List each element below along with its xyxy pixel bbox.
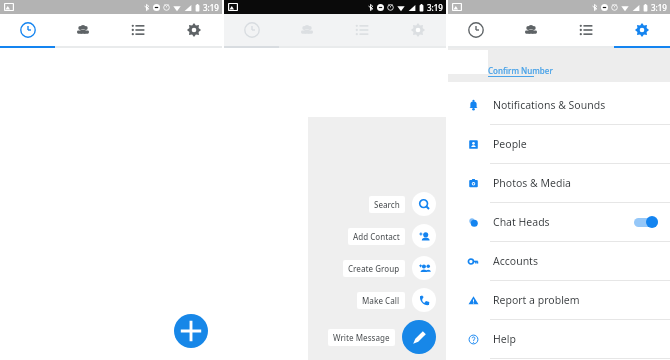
button[interactable]: Recents: [224, 14, 279, 46]
button[interactable]: Help: [448, 320, 670, 359]
button[interactable]: Notifications & Sounds: [448, 86, 670, 125]
button[interactable]: Settings: [390, 14, 446, 46]
staticText: 3:19: [651, 2, 667, 13]
button[interactable]: Recents: [0, 14, 55, 46]
button[interactable]: Messages: [110, 14, 166, 46]
other: Search: [412, 192, 436, 216]
staticText: Add Contact: [353, 231, 400, 242]
button[interactable]: Accounts: [448, 242, 670, 281]
other: Create Group: [412, 256, 436, 280]
button[interactable]: People: [279, 14, 334, 46]
staticText: Notifications & Sounds: [493, 98, 606, 112]
staticText: Help: [493, 332, 516, 346]
staticText: Create Group: [348, 263, 400, 274]
staticText: People: [493, 137, 527, 151]
button[interactable]: People: [55, 14, 110, 46]
button[interactable]: New: [174, 314, 208, 348]
other: Write Message: [402, 320, 436, 354]
button[interactable]: Photos & Media: [448, 164, 670, 203]
button[interactable]: Add Contact: [224, 224, 436, 248]
button[interactable]: Settings: [166, 14, 222, 46]
button[interactable]: People: [448, 125, 670, 164]
staticText: Confirm Number: [488, 65, 553, 76]
button[interactable]: Write Message: [224, 320, 436, 354]
button[interactable]: Create Group: [224, 256, 436, 280]
other: Add Contact: [412, 224, 436, 248]
button[interactable]: Report a problem: [448, 281, 670, 320]
button[interactable]: Messages: [558, 14, 614, 46]
staticText: Photos & Media: [493, 176, 572, 190]
staticText: 3:19: [427, 2, 443, 13]
staticText: Chat Heads: [493, 215, 550, 229]
staticText: Make Call: [362, 295, 400, 306]
button[interactable]: Settings: [614, 14, 670, 46]
button[interactable]: Recents: [448, 14, 503, 46]
staticText: Accounts: [493, 254, 538, 268]
button[interactable]: People: [503, 14, 558, 46]
button[interactable]: Make Call: [224, 288, 436, 312]
button[interactable]: Search: [224, 192, 436, 216]
button[interactable]: Messages: [334, 14, 390, 46]
staticText: Search: [374, 199, 400, 210]
button[interactable]: Chat Heads: [448, 203, 670, 242]
staticText: Report a problem: [493, 293, 580, 307]
staticText: Write Message: [333, 332, 390, 343]
button[interactable]: Confirm Number: [488, 65, 553, 77]
other: Make Call: [412, 288, 436, 312]
staticText: 3:19: [203, 2, 219, 13]
